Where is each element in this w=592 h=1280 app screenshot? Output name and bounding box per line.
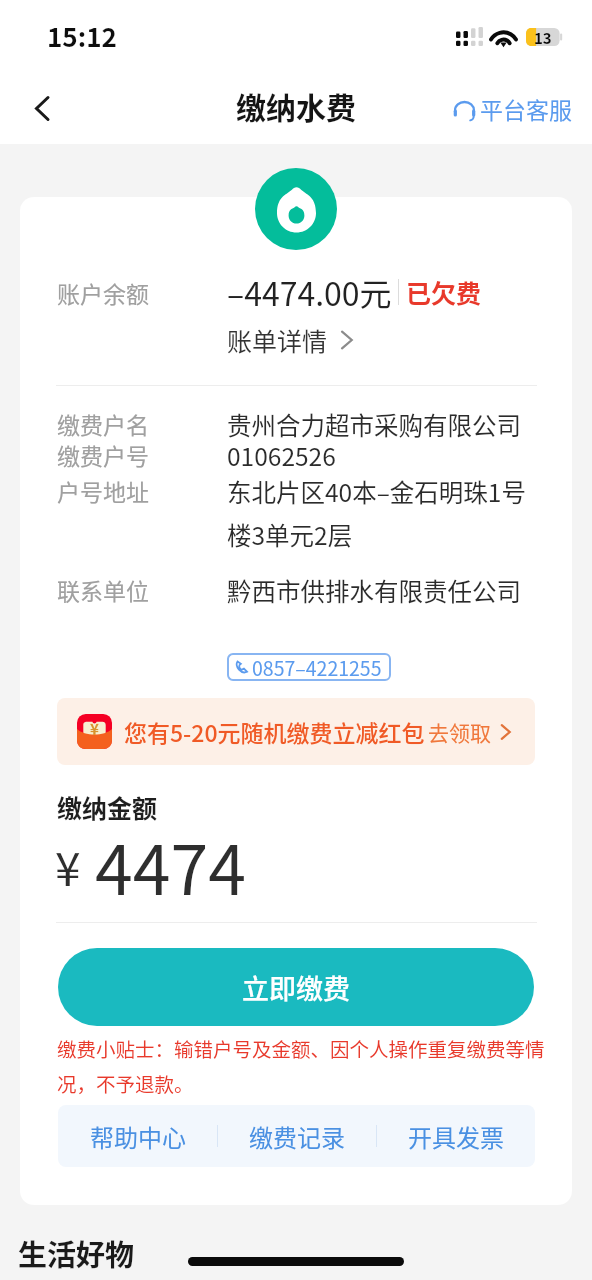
staticText: 黔西市供排水有限责任公司 — [227, 573, 521, 608]
staticText: 账户余额 — [57, 276, 227, 309]
staticText: 开具发票 — [408, 1119, 504, 1154]
button[interactable]: 帮助中心 — [58, 1105, 217, 1167]
staticText: 立即缴费 — [242, 968, 350, 1007]
staticText: 缴费户名 — [57, 407, 227, 440]
staticText: 缴费户号 — [57, 438, 227, 471]
staticText: 缴纳水费 — [236, 84, 356, 127]
button[interactable]: 开具发票 — [377, 1105, 535, 1167]
staticText: 0857–4221255 — [252, 653, 382, 681]
staticText: 01062526 — [227, 438, 336, 473]
staticText: 东北片区40本–金石明珠1号 楼3单元2层 — [227, 474, 526, 552]
staticText: ¥ — [90, 718, 99, 740]
staticText: 已欠费 — [406, 274, 482, 310]
staticText: 去领取 — [428, 717, 491, 747]
staticText: 缴费记录 — [249, 1119, 345, 1154]
staticText: ¥ — [55, 833, 81, 900]
button[interactable]: Back — [16, 82, 68, 134]
button[interactable]: 0857–4221255 — [227, 653, 391, 681]
staticText: 户号地址 — [57, 474, 227, 507]
staticText: 4474 — [95, 816, 246, 914]
staticText: 缴纳金额 — [57, 789, 158, 825]
staticText: 15:12 — [47, 17, 117, 55]
staticText: 缴费小贴士：输错户号及金额、因个人操作重复缴费等情况，不予退款。 — [57, 1034, 547, 1098]
button[interactable]: ¥ — [57, 698, 535, 765]
button[interactable]: 账单详情 — [225, 320, 359, 360]
button[interactable]: 缴费记录 — [218, 1105, 376, 1167]
staticText: 您有5-20元随机缴费立减红包 — [124, 715, 425, 748]
button[interactable]: 平台客服 — [451, 84, 572, 133]
staticText: 13 — [534, 27, 552, 45]
staticText: 贵州合力超市采购有限公司 — [227, 407, 521, 442]
staticText: 帮助中心 — [90, 1119, 186, 1154]
button[interactable]: 立即缴费 — [58, 948, 534, 1026]
staticText: 生活好物 — [18, 1232, 135, 1274]
staticText: 联系单位 — [57, 573, 227, 606]
staticText: –4474.00元 — [227, 269, 392, 315]
staticText: 账单详情 — [227, 322, 328, 358]
staticText: 平台客服 — [480, 92, 572, 125]
